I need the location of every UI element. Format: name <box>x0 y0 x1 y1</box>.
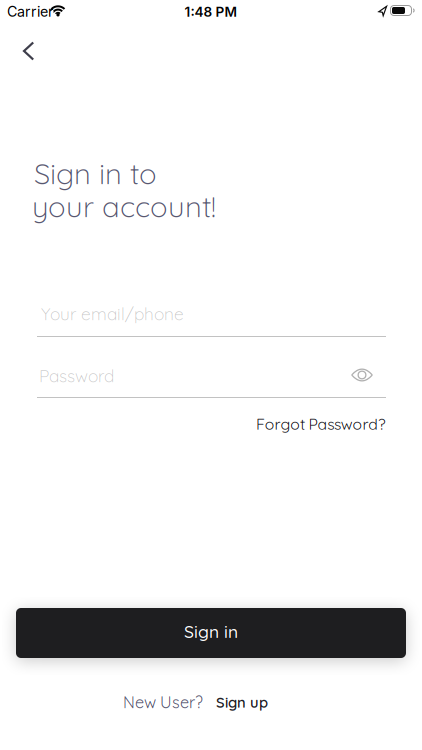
staticText: Password <box>39 365 114 387</box>
button[interactable]: Show password <box>344 360 380 390</box>
button[interactable]: Password <box>37 362 386 398</box>
staticText: Sign up <box>216 693 268 711</box>
staticText: Sign in to <box>34 155 157 192</box>
button[interactable]: Sign in <box>16 608 406 658</box>
staticText: your account! <box>32 188 216 225</box>
staticText: Forgot Password? <box>256 414 386 434</box>
staticText: Carrier <box>7 3 53 20</box>
staticText: 1:48 PM <box>184 3 237 20</box>
button[interactable]: New User? <box>123 692 268 712</box>
staticText: New User? <box>123 692 203 712</box>
staticText: Your email/phone <box>41 303 184 325</box>
button[interactable]: Your email/phone <box>37 303 386 337</box>
button[interactable]: Forgot Password? <box>256 414 386 434</box>
button[interactable]: Back <box>7 31 51 71</box>
staticText: Sign in <box>184 621 238 642</box>
